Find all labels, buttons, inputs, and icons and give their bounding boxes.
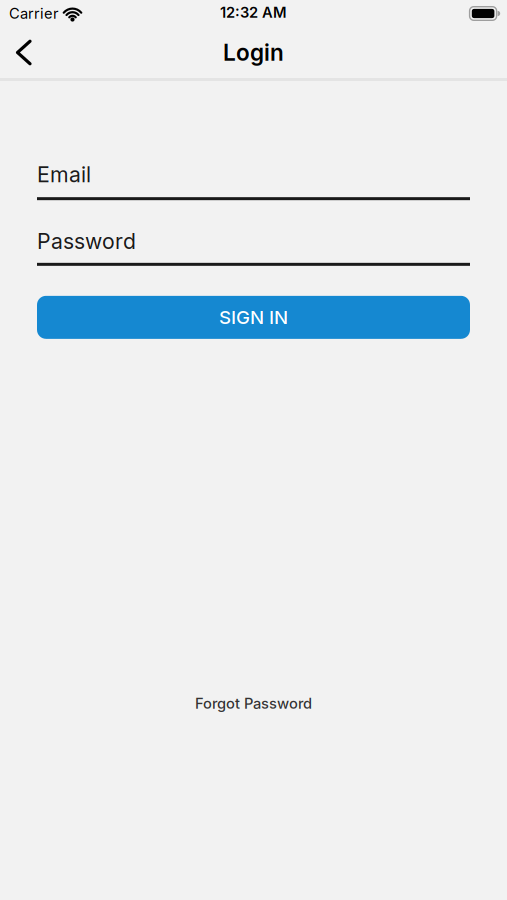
staticText: Forgot Password: [195, 695, 312, 712]
button[interactable]: Email: [37, 162, 470, 200]
staticText: Email: [37, 162, 91, 187]
staticText: SIGN IN: [219, 306, 288, 328]
staticText: Password: [37, 229, 136, 254]
button[interactable]: SIGN IN: [37, 296, 470, 339]
button[interactable]: Forgot Password: [195, 695, 312, 712]
staticText: Carrier: [9, 5, 59, 22]
staticText: Login: [223, 39, 284, 66]
button[interactable]: Password: [37, 229, 470, 266]
staticText: 12:32 AM: [220, 4, 287, 21]
button[interactable]: Back: [0, 31, 42, 74]
